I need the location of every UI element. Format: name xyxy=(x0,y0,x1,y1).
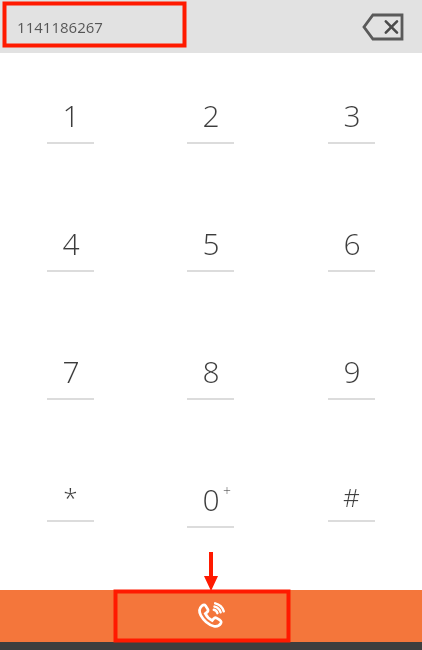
staticText: # xyxy=(343,479,360,514)
staticText: + xyxy=(223,481,231,500)
staticText: 9 xyxy=(343,351,361,392)
staticText: 1 xyxy=(62,95,80,136)
button[interactable]: 5 xyxy=(140,223,281,291)
button[interactable]: Call xyxy=(123,590,299,642)
button[interactable]: 7 xyxy=(0,351,140,419)
staticText: 2 xyxy=(202,95,220,136)
staticText: 1141186267 xyxy=(17,17,103,37)
button[interactable]: Backspace xyxy=(360,10,406,44)
button[interactable]: 2 xyxy=(140,95,281,163)
button[interactable]: 1 xyxy=(0,95,140,163)
staticText: 7 xyxy=(62,351,80,392)
button[interactable]: * xyxy=(0,479,140,547)
button[interactable]: 1141186267 xyxy=(17,17,103,37)
staticText: 4 xyxy=(62,223,80,264)
staticText: * xyxy=(63,479,78,514)
staticText: 0 xyxy=(202,479,220,520)
button[interactable]: 4 xyxy=(0,223,140,291)
staticText: 6 xyxy=(343,223,361,264)
button[interactable]: 8 xyxy=(140,351,281,419)
staticText: 3 xyxy=(343,95,361,136)
button[interactable]: # xyxy=(281,479,422,547)
button[interactable]: 3 xyxy=(281,95,422,163)
button[interactable]: 9 xyxy=(281,351,422,419)
staticText: 8 xyxy=(202,351,220,392)
button[interactable]: 0 xyxy=(140,479,281,547)
button[interactable]: 6 xyxy=(281,223,422,291)
staticText: 5 xyxy=(202,223,220,264)
